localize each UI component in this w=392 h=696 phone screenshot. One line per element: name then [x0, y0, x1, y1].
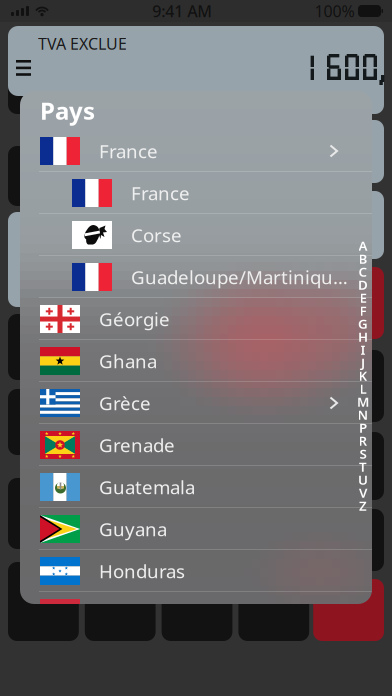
staticText: D: [358, 276, 368, 293]
staticText: N: [357, 406, 368, 423]
staticText: G: [358, 315, 368, 332]
button[interactable]: Ghana: [20, 340, 372, 382]
staticText: 9:41 AM: [152, 0, 212, 22]
button[interactable]: France: [20, 172, 372, 214]
button[interactable]: Hongrie: [20, 592, 372, 634]
staticText: France: [99, 139, 158, 163]
button[interactable]: Guatemala: [20, 466, 372, 508]
button[interactable]: Menu: [8, 53, 44, 85]
button[interactable]: Grenade: [20, 424, 372, 466]
staticText: K: [358, 367, 367, 384]
button[interactable]: Corse: [20, 214, 372, 256]
button[interactable]: Grèce: [20, 382, 372, 424]
staticText: R: [358, 432, 367, 449]
staticText: Guadeloupe/Martinique/Réu…: [131, 265, 356, 289]
button[interactable]: France: [20, 130, 372, 172]
staticText: M: [357, 393, 369, 410]
staticText: C: [358, 263, 367, 280]
staticText: F: [359, 302, 366, 319]
staticText: A: [358, 237, 367, 254]
staticText: Corse: [131, 223, 182, 247]
staticText: Géorgie: [99, 307, 170, 331]
staticText: V: [359, 484, 367, 501]
staticText: E: [359, 289, 366, 306]
staticText: H: [358, 328, 368, 345]
staticText: L: [359, 380, 366, 397]
staticText: Hongrie: [99, 601, 171, 625]
button[interactable]: Guadeloupe/Martinique/Réu…: [20, 256, 372, 298]
staticText: Ghana: [99, 349, 157, 373]
staticText: T: [359, 458, 367, 475]
button[interactable]: Géorgie: [20, 298, 372, 340]
staticText: Grèce: [99, 391, 151, 415]
button[interactable]: Honduras: [20, 550, 372, 592]
staticText: J: [361, 354, 365, 371]
staticText: Honduras: [99, 559, 185, 583]
staticText: S: [359, 445, 366, 462]
staticText: U: [358, 471, 368, 488]
staticText: Guatemala: [99, 475, 195, 499]
staticText: Grenade: [99, 433, 175, 457]
staticText: P: [359, 419, 367, 436]
staticText: I: [360, 341, 365, 358]
staticText: B: [358, 250, 367, 267]
button[interactable]: Guyana: [20, 508, 372, 550]
staticText: 100%: [314, 0, 354, 22]
staticText: Pays: [40, 95, 95, 126]
staticText: Z: [359, 497, 367, 514]
staticText: France: [131, 181, 190, 205]
staticText: Guyana: [99, 517, 167, 541]
staticText: TVA EXCLUE: [38, 33, 127, 54]
